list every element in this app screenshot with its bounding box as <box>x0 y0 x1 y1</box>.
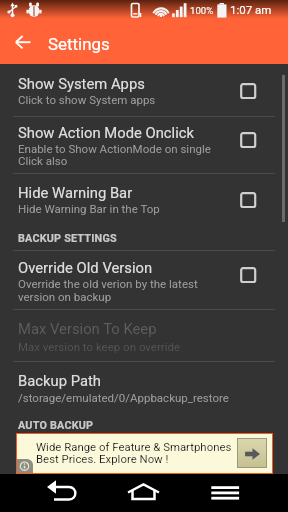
button[interactable]: Toggle option <box>232 124 264 156</box>
staticText: Click also <box>18 154 68 167</box>
staticText: Show System Apps <box>18 75 145 92</box>
button[interactable]: Back <box>7 27 39 59</box>
button[interactable] <box>0 174 288 224</box>
staticText: Click to show System apps <box>18 93 156 106</box>
staticText: Backup Path <box>18 372 101 389</box>
button[interactable]: Ad info <box>16 433 273 474</box>
staticText: AUTO BACKUP <box>18 419 94 432</box>
button[interactable]: Toggle option <box>232 75 264 107</box>
staticText: Wide Range of Feature & Smartphones <box>36 440 232 453</box>
button[interactable]: Back <box>33 474 93 512</box>
staticText: Show Action Mode Onclick <box>18 124 195 141</box>
button[interactable] <box>0 310 288 360</box>
button[interactable]: Toggle option <box>232 184 264 216</box>
staticText: Settings <box>48 34 110 54</box>
staticText: Override the old verion by the latest <box>18 277 198 290</box>
button[interactable] <box>0 117 288 173</box>
staticText: Max version to keep on override <box>18 340 181 353</box>
button[interactable] <box>0 65 288 116</box>
button[interactable] <box>0 251 288 309</box>
staticText: Hide Warning Bar <box>18 184 133 201</box>
staticText: Hide Warning Bar in the Top <box>18 202 160 215</box>
button[interactable] <box>0 362 288 410</box>
staticText: 100% <box>190 5 214 16</box>
staticText: version on backup <box>18 290 112 303</box>
staticText: Enable to Show ActionMode on single <box>18 142 211 155</box>
staticText: Max Version To Keep <box>18 320 157 337</box>
staticText: BACKUP SETTINGS <box>18 232 117 245</box>
button[interactable]: Home <box>114 474 174 512</box>
staticText: /storage/emulated/0/Appbackup_restore <box>18 391 229 404</box>
button[interactable]: Toggle option <box>232 259 264 291</box>
staticText: Best Prices. Explore Now ! <box>36 452 169 465</box>
button[interactable]: Ad info <box>17 459 33 473</box>
staticText: Override Old Version <box>18 259 153 276</box>
button[interactable]: Open advertisement <box>237 438 267 468</box>
button[interactable]: Recent apps <box>195 474 255 512</box>
staticText: 1:07 am <box>230 3 272 16</box>
